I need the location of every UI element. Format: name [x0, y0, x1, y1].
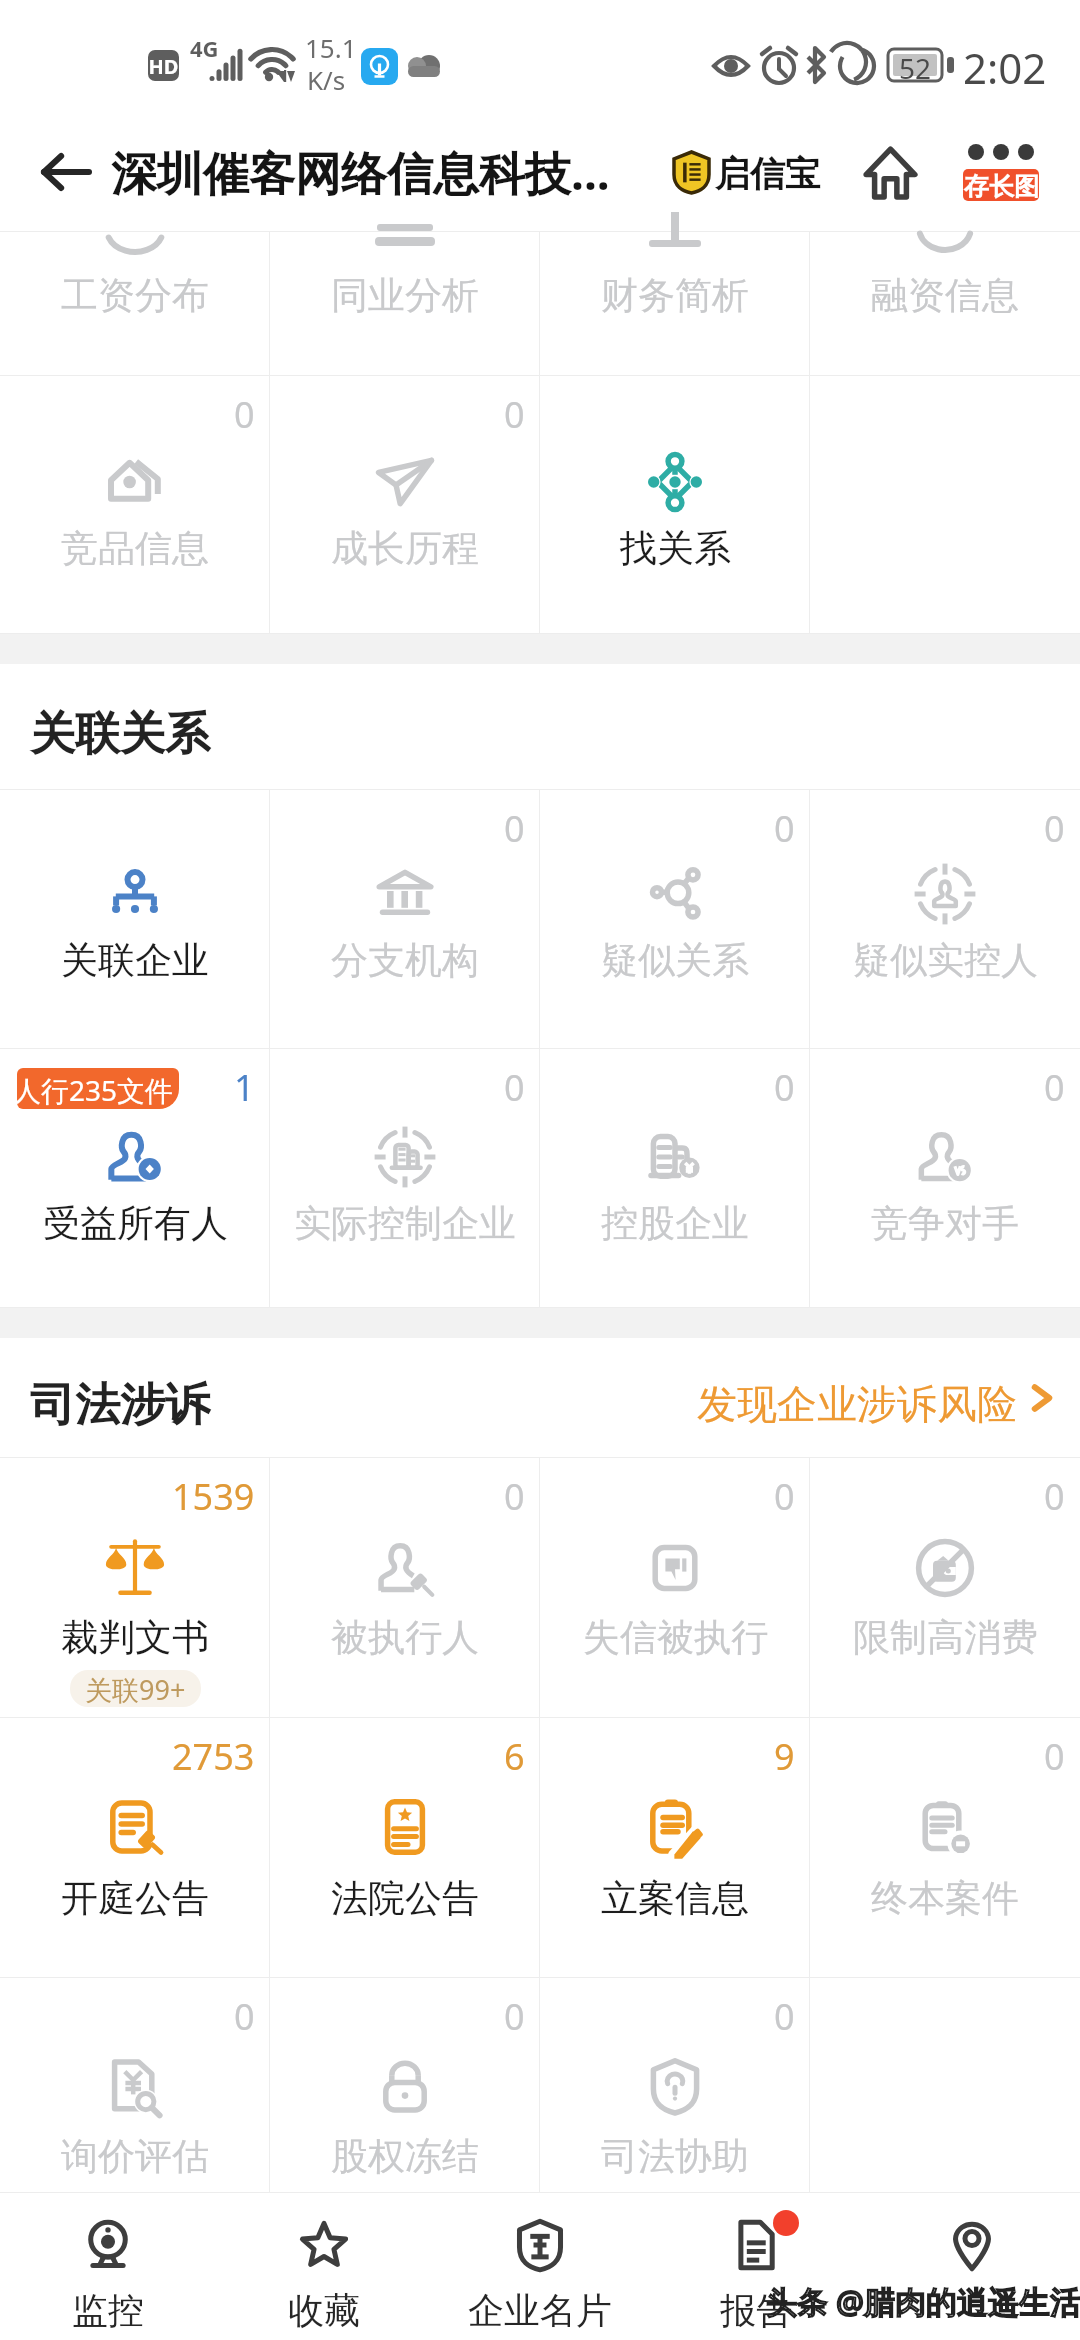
button[interactable]: 0 — [540, 1458, 810, 1718]
staticText: 关联企业 — [61, 937, 209, 984]
staticText: 0 — [1044, 1732, 1065, 1781]
staticText: 竞争对手 — [871, 1200, 1019, 1247]
staticText: 疑似关系 — [601, 937, 749, 984]
button[interactable]: 报告 — [648, 2193, 864, 2340]
staticText: 开庭公告 — [61, 1875, 209, 1922]
button[interactable]: 0 — [270, 1978, 540, 2193]
button[interactable]: 0 — [270, 790, 540, 1049]
staticText: 15.1 — [305, 30, 357, 65]
staticText: 6 — [504, 1732, 525, 1781]
staticText: 9 — [774, 1732, 795, 1781]
button[interactable]: 0 — [270, 1458, 540, 1718]
button[interactable]: 找关系 — [540, 376, 810, 634]
staticText: 司法协助 — [601, 2133, 749, 2180]
staticText: 0 — [234, 390, 255, 439]
staticText: 0 — [234, 1992, 255, 2041]
staticText: 法院公告 — [331, 1875, 479, 1922]
staticText: HD — [148, 53, 179, 80]
staticText: 控股企业 — [601, 1200, 749, 1247]
button[interactable]: 财务简析 — [540, 232, 810, 376]
button[interactable]: 启信宝 — [668, 112, 826, 232]
button[interactable]: 1539 — [0, 1458, 270, 1718]
staticText: 报告 — [720, 2288, 792, 2333]
button[interactable]: 0 — [540, 790, 810, 1049]
staticText: 疑似实控人 — [853, 937, 1038, 984]
button[interactable]: 1 — [0, 1049, 270, 1308]
staticText: 1 — [234, 1063, 255, 1112]
staticText: 询价评估 — [61, 2133, 209, 2180]
staticText: 融资信息 — [871, 272, 1019, 319]
staticText: 发现企业涉诉风险 — [697, 1379, 1017, 1429]
button[interactable]: 0 — [810, 790, 1080, 1049]
staticText: 司法涉诉 — [30, 1377, 210, 1434]
staticText: 关联关系 — [30, 706, 210, 763]
button[interactable]: Location — [864, 2193, 1080, 2340]
staticText: 裁判文书 — [61, 1614, 209, 1661]
staticText: 0 — [1044, 1063, 1065, 1112]
staticText: 0 — [774, 1472, 795, 1521]
staticText: 关联99+ — [85, 1671, 186, 1707]
staticText: 0 — [504, 804, 525, 853]
staticText: 监控 — [72, 2288, 144, 2333]
staticText: 受益所有人 — [43, 1200, 228, 1247]
staticText: K/s — [307, 62, 346, 97]
button[interactable]: 同业分析 — [270, 232, 540, 376]
staticText: 财务简析 — [601, 272, 749, 319]
staticText: 4G — [190, 33, 219, 63]
button[interactable]: 0 — [0, 1978, 270, 2193]
button[interactable]: 融资信息 — [810, 232, 1080, 376]
button[interactable]: Home — [848, 112, 932, 232]
staticText: 52 — [893, 49, 937, 87]
staticText: 头条 @腊肉的逍遥生活 — [766, 2280, 1080, 2322]
button[interactable]: 0 — [270, 1049, 540, 1308]
staticText: 工资分布 — [61, 272, 209, 319]
staticText: 收藏 — [288, 2288, 360, 2333]
staticText: 失信被执行 — [583, 1614, 768, 1661]
staticText: 股权冻结 — [331, 2133, 479, 2180]
button[interactable]: 发现企业涉诉风险 — [677, 1338, 1080, 1458]
button[interactable]: 关联企业 — [0, 790, 270, 1049]
button[interactable]: More options — [946, 112, 1056, 232]
staticText: 1539 — [172, 1472, 255, 1521]
staticText: 终本案件 — [871, 1875, 1019, 1922]
button[interactable]: 0 — [540, 1978, 810, 2193]
staticText: 人行235文件 — [17, 1071, 174, 1109]
staticText: 立案信息 — [601, 1875, 749, 1922]
staticText: 竞品信息 — [61, 525, 209, 572]
staticText: 0 — [504, 1472, 525, 1521]
staticText: 0 — [1044, 804, 1065, 853]
button[interactable]: 监控 — [0, 2193, 216, 2340]
staticText: 2:02 — [963, 39, 1047, 96]
staticText: 0 — [774, 1992, 795, 2041]
staticText: 被执行人 — [331, 1614, 479, 1661]
button[interactable]: 6 — [270, 1718, 540, 1978]
button[interactable]: 0 — [540, 1049, 810, 1308]
staticText: 0 — [1044, 1472, 1065, 1521]
staticText: 0 — [504, 1992, 525, 2041]
button[interactable]: 企业名片 — [432, 2193, 648, 2340]
staticText: 实际控制企业 — [294, 1200, 516, 1247]
staticText: 0 — [504, 1063, 525, 1112]
button[interactable]: 0 — [810, 1458, 1080, 1718]
staticText: 同业分析 — [331, 272, 479, 319]
staticText: 0 — [774, 804, 795, 853]
button[interactable]: 2753 — [0, 1718, 270, 1978]
staticText: 存长图 — [964, 171, 1039, 201]
staticText: 分支机构 — [331, 937, 479, 984]
staticText: 0 — [504, 390, 525, 439]
button[interactable]: 0 — [810, 1718, 1080, 1978]
button[interactable]: 9 — [540, 1718, 810, 1978]
button[interactable]: 收藏 — [216, 2193, 432, 2340]
staticText: 0 — [774, 1063, 795, 1112]
button[interactable]: 0 — [0, 376, 270, 634]
button[interactable]: 工资分布 — [0, 232, 270, 376]
staticText: 成长历程 — [331, 525, 479, 572]
button[interactable]: 0 — [270, 376, 540, 634]
staticText: 启信宝 — [715, 152, 820, 196]
staticText: 2753 — [172, 1732, 255, 1781]
button[interactable]: Back — [16, 112, 114, 232]
staticText: 企业名片 — [468, 2288, 612, 2333]
button[interactable]: 0 — [810, 1049, 1080, 1308]
staticText: 限制高消费 — [853, 1614, 1038, 1661]
staticText: 找关系 — [620, 525, 731, 572]
